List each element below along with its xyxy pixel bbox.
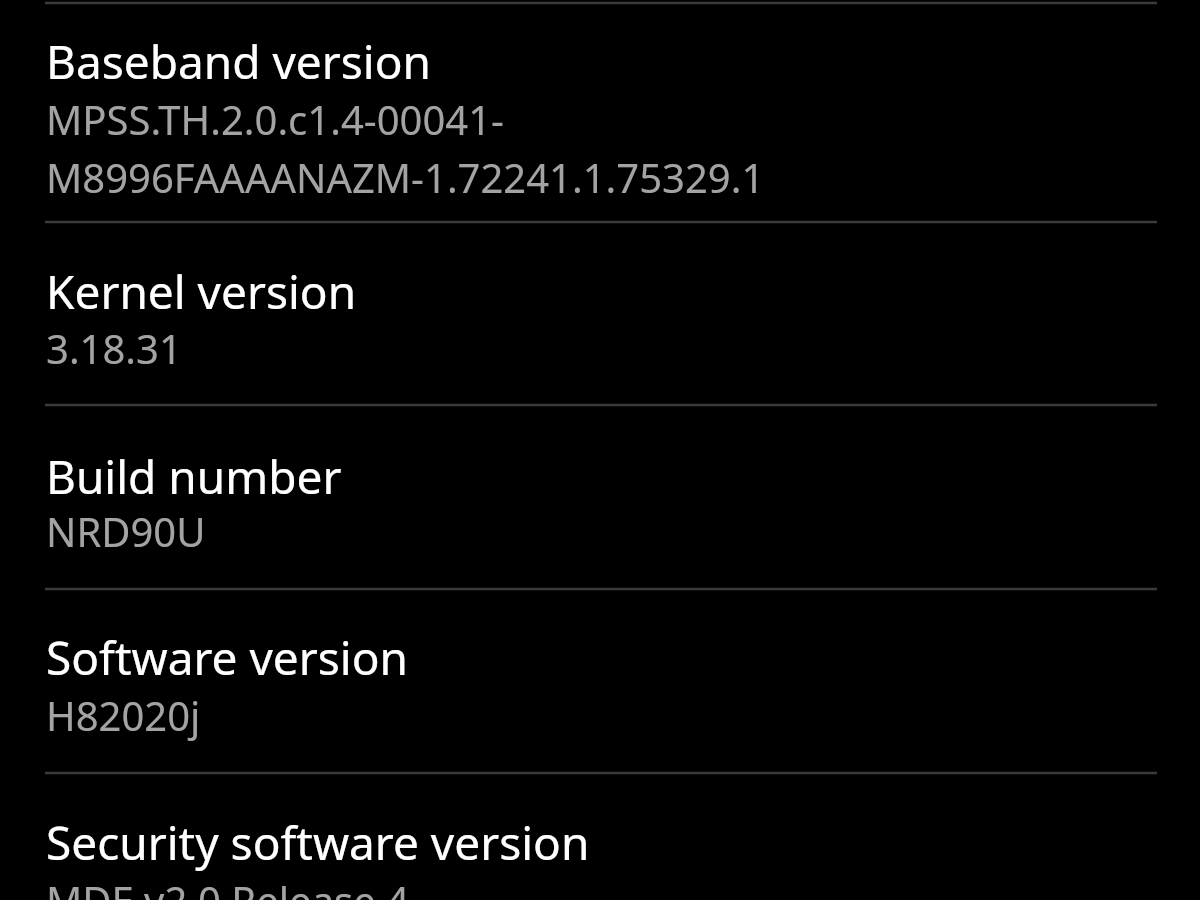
button[interactable]: Software version — [0, 591, 1200, 772]
staticText: H82020j — [46, 688, 201, 742]
button[interactable]: Kernel version — [0, 224, 1200, 404]
button[interactable]: Baseband version — [0, 5, 1200, 221]
button[interactable]: Security software version — [0, 775, 1200, 900]
staticText: Security software version — [46, 811, 590, 874]
staticText: Build number — [46, 445, 342, 508]
staticText: NRD90U — [46, 504, 206, 558]
staticText: Baseband version — [46, 30, 431, 93]
button[interactable]: Build number — [0, 407, 1200, 588]
staticText: 3.18.31 — [46, 321, 182, 375]
staticText: MPSS.TH.2.0.c1.4-00041- — [46, 92, 504, 146]
staticText: Software version — [46, 626, 408, 689]
staticText: M8996FAAAANAZM-1.72241.1.75329.1 — [46, 150, 765, 204]
staticText: Kernel version — [46, 260, 357, 323]
staticText: MDE v2.0 Release 4 — [46, 873, 410, 900]
